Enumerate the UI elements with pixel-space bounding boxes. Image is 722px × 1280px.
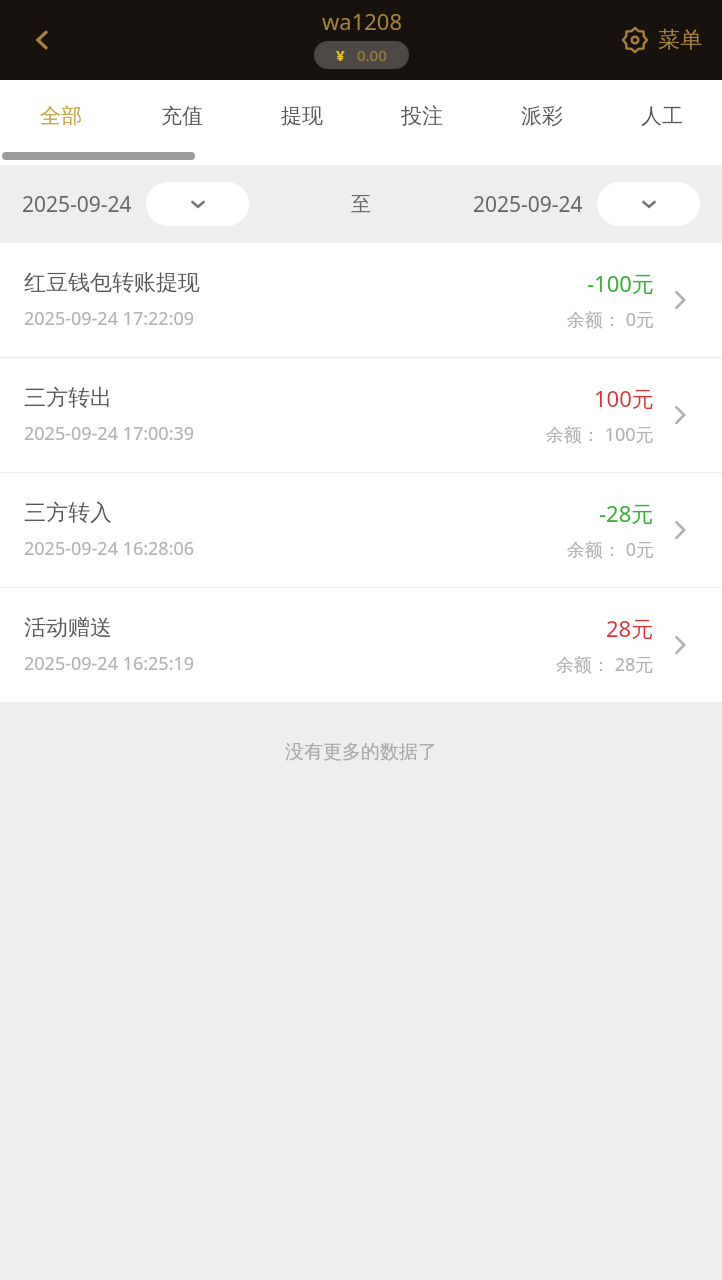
- button[interactable]: Select date: [597, 182, 700, 226]
- button[interactable]: 红豆钱包转账提现: [0, 243, 722, 357]
- staticText: 2025-09-24: [473, 190, 583, 219]
- staticText: 2025-09-24 16:28:06: [24, 536, 195, 561]
- staticText: wa1208: [322, 6, 402, 36]
- staticText: 没有更多的数据了: [285, 740, 437, 764]
- button[interactable]: 三方转入: [0, 473, 722, 587]
- staticText: 100元: [594, 383, 654, 413]
- staticText: 0.00: [357, 45, 387, 65]
- button[interactable]: 三方转出: [0, 358, 722, 472]
- staticText: 投注: [401, 103, 443, 129]
- staticText: -28元: [599, 498, 654, 528]
- button[interactable]: ¥: [314, 41, 409, 69]
- staticText: 充值: [161, 103, 203, 129]
- staticText: 活动赠送: [24, 614, 112, 642]
- button[interactable]: 菜单: [614, 19, 708, 61]
- staticText: 至: [351, 192, 371, 217]
- staticText: 三方转入: [24, 499, 112, 527]
- staticText: 余额： 0元: [567, 307, 654, 332]
- button[interactable]: 充值: [121, 80, 242, 152]
- staticText: -100元: [587, 268, 654, 298]
- button[interactable]: 活动赠送: [0, 588, 722, 702]
- button[interactable]: Back: [14, 12, 70, 68]
- staticText: 红豆钱包转账提现: [24, 269, 200, 297]
- staticText: 2025-09-24: [22, 190, 132, 219]
- staticText: 提现: [281, 103, 323, 129]
- button[interactable]: Select date: [146, 182, 249, 226]
- staticText: 派彩: [521, 103, 563, 129]
- staticText: 2025-09-24 17:22:09: [24, 306, 195, 331]
- button[interactable]: 派彩: [482, 80, 602, 152]
- staticText: 三方转出: [24, 384, 112, 412]
- button[interactable]: 提现: [242, 80, 362, 152]
- button[interactable]: 人工: [602, 80, 722, 152]
- staticText: ¥: [336, 45, 345, 65]
- staticText: 菜单: [658, 26, 702, 54]
- staticText: 余额： 28元: [556, 652, 654, 677]
- staticText: 28元: [606, 613, 654, 643]
- staticText: 2025-09-24 16:25:19: [24, 651, 195, 676]
- button[interactable]: 投注: [362, 80, 482, 152]
- button[interactable]: 全部: [0, 80, 121, 152]
- staticText: 2025-09-24 17:00:39: [24, 421, 195, 446]
- staticText: 全部: [40, 103, 82, 129]
- staticText: 余额： 100元: [546, 422, 654, 447]
- staticText: 余额： 0元: [567, 537, 654, 562]
- staticText: 人工: [641, 103, 683, 129]
